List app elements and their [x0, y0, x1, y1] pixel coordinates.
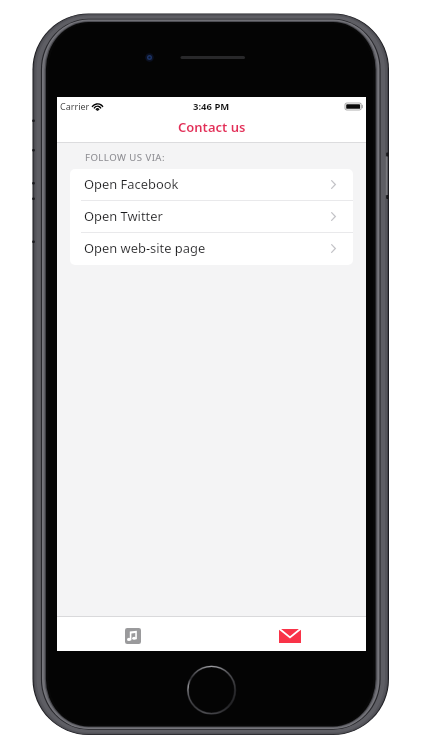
- button[interactable]: Contact us: [211, 617, 366, 651]
- button[interactable]: Open web-site page: [70, 233, 353, 265]
- staticText: Open web-site page: [84, 239, 206, 257]
- staticText: Open Twitter: [84, 207, 163, 225]
- button[interactable]: Open Facebook: [70, 169, 353, 201]
- staticText: Contact us: [178, 118, 246, 136]
- button[interactable]: Open Twitter: [70, 201, 353, 233]
- staticText: Carrier: [60, 100, 90, 112]
- staticText: Open Facebook: [84, 175, 179, 193]
- button[interactable]: Music: [57, 617, 211, 651]
- staticText: FOLLOW US VIA:: [85, 151, 165, 164]
- staticText: 3:46 PM: [193, 100, 230, 113]
